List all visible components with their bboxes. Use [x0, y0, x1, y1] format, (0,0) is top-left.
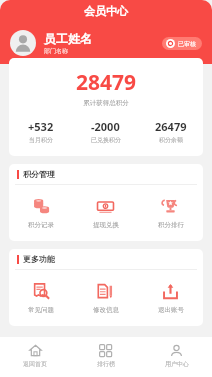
staticText: 已审核 — [178, 40, 196, 48]
staticText: 常见问题 — [28, 306, 54, 314]
staticText: 员工姓名 — [44, 31, 92, 46]
button[interactable]: 提现兑换 — [73, 195, 138, 231]
staticText: 积分记录 — [28, 221, 54, 229]
staticText: 部门名称 — [44, 47, 68, 55]
staticText: 退出账号 — [158, 306, 184, 314]
staticText: 用户中心 — [165, 360, 189, 368]
button[interactable]: 退出账号 — [138, 280, 203, 316]
staticText: 会员中心 — [84, 4, 128, 18]
staticText: 排行榜 — [97, 360, 115, 368]
button[interactable]: 常见问题 — [9, 280, 73, 316]
button[interactable]: 排行榜 — [70, 337, 141, 377]
staticText: 28479 — [9, 68, 203, 97]
staticText: 更多功能 — [23, 254, 55, 264]
staticText: 修改信息 — [93, 306, 119, 314]
staticText: 26479 — [155, 119, 187, 134]
staticText: -2000 — [91, 119, 120, 134]
staticText: 积分管理 — [23, 169, 55, 179]
staticText: 提现兑换 — [93, 221, 119, 229]
button[interactable]: 返回首页 — [0, 337, 70, 377]
staticText: 当月积分 — [29, 136, 53, 144]
button[interactable]: 修改信息 — [73, 280, 138, 316]
button[interactable]: 已审核 — [162, 37, 202, 50]
button[interactable]: 用户中心 — [141, 337, 212, 377]
button[interactable]: 积分排行 — [138, 195, 203, 231]
staticText: 积分排行 — [158, 221, 184, 229]
staticText: 返回首页 — [23, 360, 47, 368]
staticText: 积分余额 — [159, 136, 183, 144]
staticText: 累计获得总积分 — [9, 99, 203, 107]
button[interactable]: 积分记录 — [9, 195, 73, 231]
staticText: +532 — [28, 119, 54, 134]
staticText: 已兑换积分 — [91, 136, 121, 144]
